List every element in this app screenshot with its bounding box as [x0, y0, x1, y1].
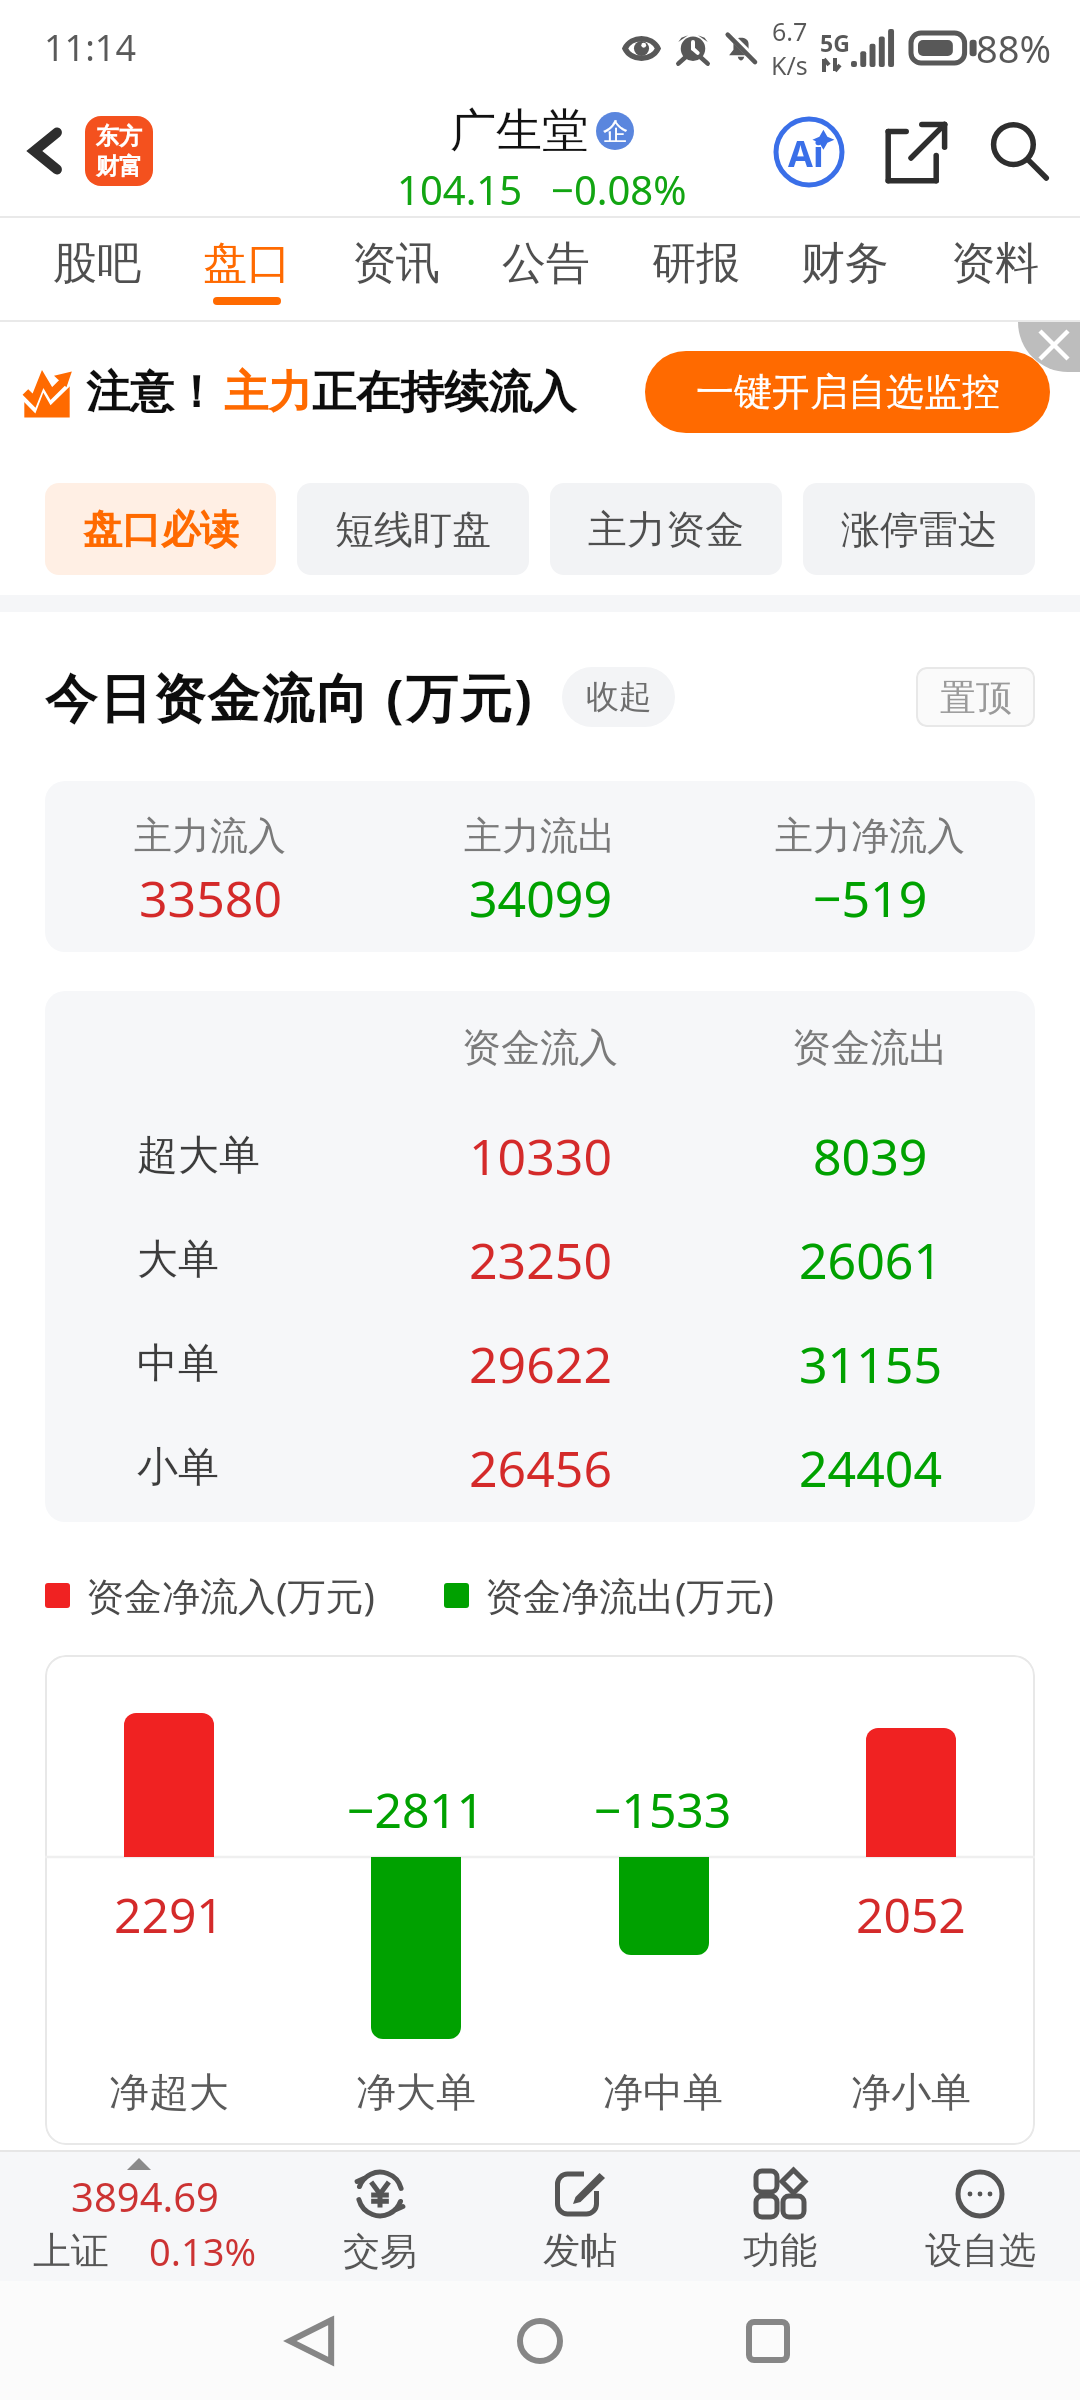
staticText: 研报 [652, 236, 740, 291]
staticText: 置顶 [940, 675, 1012, 720]
staticText: 上证 [33, 2227, 109, 2275]
staticText: 34099 [469, 864, 612, 932]
staticText: 2291 [114, 1882, 224, 1947]
staticText: 一键开启自选监控 [696, 368, 1000, 416]
staticText: 资金流出 [792, 1023, 948, 1072]
button[interactable]: 置顶 [916, 667, 1035, 727]
staticText: 88% [976, 22, 1052, 74]
staticText: 资金净流出(万元) [485, 1569, 774, 1621]
staticText: 涨停雷达 [841, 505, 997, 554]
button[interactable]: 资讯 [348, 236, 444, 305]
staticText: 设自选 [925, 2227, 1036, 2274]
staticText: 正在持续流入 [312, 365, 576, 420]
staticText: 盘口必读 [83, 505, 239, 554]
staticText: 24404 [799, 1434, 942, 1502]
staticText: Ai [788, 129, 824, 178]
staticText: 股吧 [53, 236, 141, 291]
staticText: K/s [771, 48, 808, 82]
button[interactable]: 设自选 [880, 2150, 1080, 2281]
button[interactable]: Recent apps [720, 2293, 816, 2389]
staticText: 净中单 [603, 2067, 723, 2117]
staticText: 交易 [343, 2228, 417, 2275]
staticText: 收起 [586, 676, 652, 718]
button[interactable]: 公告 [498, 236, 594, 305]
staticText: 0.13% [149, 2225, 256, 2277]
staticText: 2052 [856, 1882, 966, 1947]
staticText: 10330 [469, 1122, 612, 1190]
staticText: 今日资金流向 (万元) [45, 661, 534, 732]
staticText: 26456 [469, 1434, 612, 1502]
button[interactable]: 资料 [947, 236, 1043, 305]
button[interactable]: East Money [85, 116, 153, 186]
button[interactable]: Search [974, 107, 1064, 197]
staticText: 注意！ [86, 365, 218, 420]
button[interactable]: 发帖 [480, 2150, 680, 2281]
button[interactable]: Back [7, 112, 85, 190]
staticText: 主力 [224, 365, 312, 420]
button[interactable]: 涨停雷达 [803, 483, 1035, 575]
button[interactable]: 功能 [680, 2150, 880, 2281]
staticText: 净小单 [851, 2067, 971, 2117]
staticText: 资料 [951, 236, 1039, 291]
staticText: 东方 [96, 122, 142, 151]
staticText: 29622 [469, 1330, 612, 1398]
button[interactable]: 3894.69 [0, 2150, 280, 2281]
button[interactable]: 盘口 [199, 236, 295, 305]
button[interactable]: 盘口必读 [45, 483, 276, 575]
button[interactable]: 收起 [562, 667, 675, 727]
staticText: 主力流入 [134, 812, 286, 860]
button[interactable]: Close ad [1018, 322, 1080, 372]
staticText: 中单 [137, 1338, 219, 1390]
button[interactable]: 交易 [280, 2150, 480, 2281]
staticText: 6.7 [772, 14, 808, 48]
button[interactable]: 主力资金 [550, 483, 782, 575]
staticText: 资讯 [352, 236, 440, 291]
staticText: 企 [603, 116, 628, 147]
staticText: 短线盯盘 [335, 505, 491, 554]
button[interactable]: 一键开启自选监控 [645, 351, 1050, 433]
staticText: 净大单 [356, 2067, 476, 2117]
button[interactable]: 股吧 [49, 236, 145, 305]
staticText: 小单 [137, 1442, 219, 1494]
staticText: 资金流入 [462, 1023, 618, 1072]
button[interactable]: Share [872, 107, 962, 197]
staticText: 资金净流入(万元) [86, 1569, 375, 1621]
staticText: −1533 [594, 1777, 732, 1842]
staticText: 主力资金 [588, 505, 744, 554]
staticText: 主力净流入 [775, 812, 965, 860]
staticText: 大单 [137, 1234, 219, 1286]
staticText: 发帖 [543, 2227, 617, 2274]
staticText: 8039 [813, 1122, 928, 1190]
staticText: 公告 [502, 236, 590, 291]
staticText: 26061 [799, 1226, 942, 1294]
staticText: 33580 [139, 864, 282, 932]
staticText: 财务 [801, 236, 889, 291]
staticText: 11:14 [44, 23, 137, 72]
button[interactable]: Home [492, 2293, 588, 2389]
button[interactable]: 短线盯盘 [297, 483, 529, 575]
staticText: 23250 [469, 1226, 612, 1294]
staticText: 5G [820, 27, 850, 58]
staticText: 3894.69 [71, 2169, 219, 2223]
staticText: 超大单 [137, 1130, 260, 1182]
staticText: 广生堂 [450, 102, 588, 160]
staticText: −519 [813, 864, 928, 932]
staticText: 功能 [743, 2227, 817, 2274]
button[interactable]: 财务 [797, 236, 893, 305]
staticText: −0.08% [551, 162, 687, 216]
button[interactable]: 研报 [648, 236, 744, 305]
button[interactable]: AI assistant [764, 107, 854, 197]
staticText: 31155 [799, 1330, 942, 1398]
button[interactable]: Back [262, 2293, 358, 2389]
staticText: 盘口 [203, 236, 291, 291]
staticText: 104.15 [397, 162, 523, 216]
staticText: 财富 [96, 152, 142, 181]
staticText: 主力流出 [464, 812, 616, 860]
staticText: −2811 [347, 1777, 485, 1842]
staticText: 净超大 [109, 2067, 229, 2117]
